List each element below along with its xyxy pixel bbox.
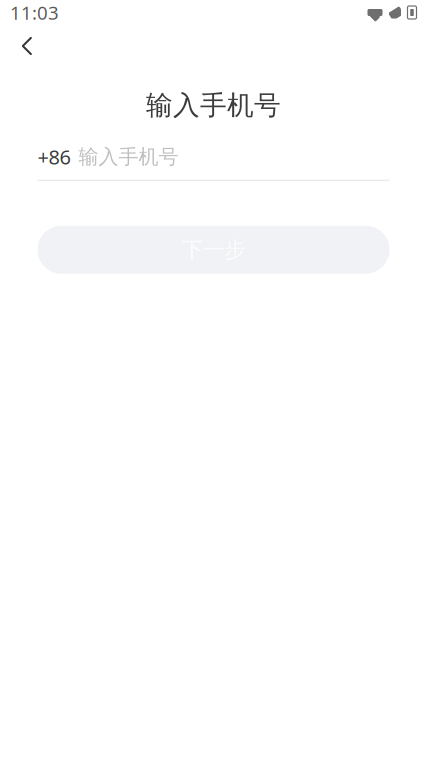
button[interactable]: Back — [4, 25, 50, 67]
staticText: 11:03 — [10, 0, 59, 25]
staticText: 输入手机号 — [146, 89, 281, 122]
staticText: 下一步 — [182, 237, 245, 263]
staticText: 输入手机号 — [78, 144, 178, 169]
staticText: +86 — [37, 143, 70, 170]
